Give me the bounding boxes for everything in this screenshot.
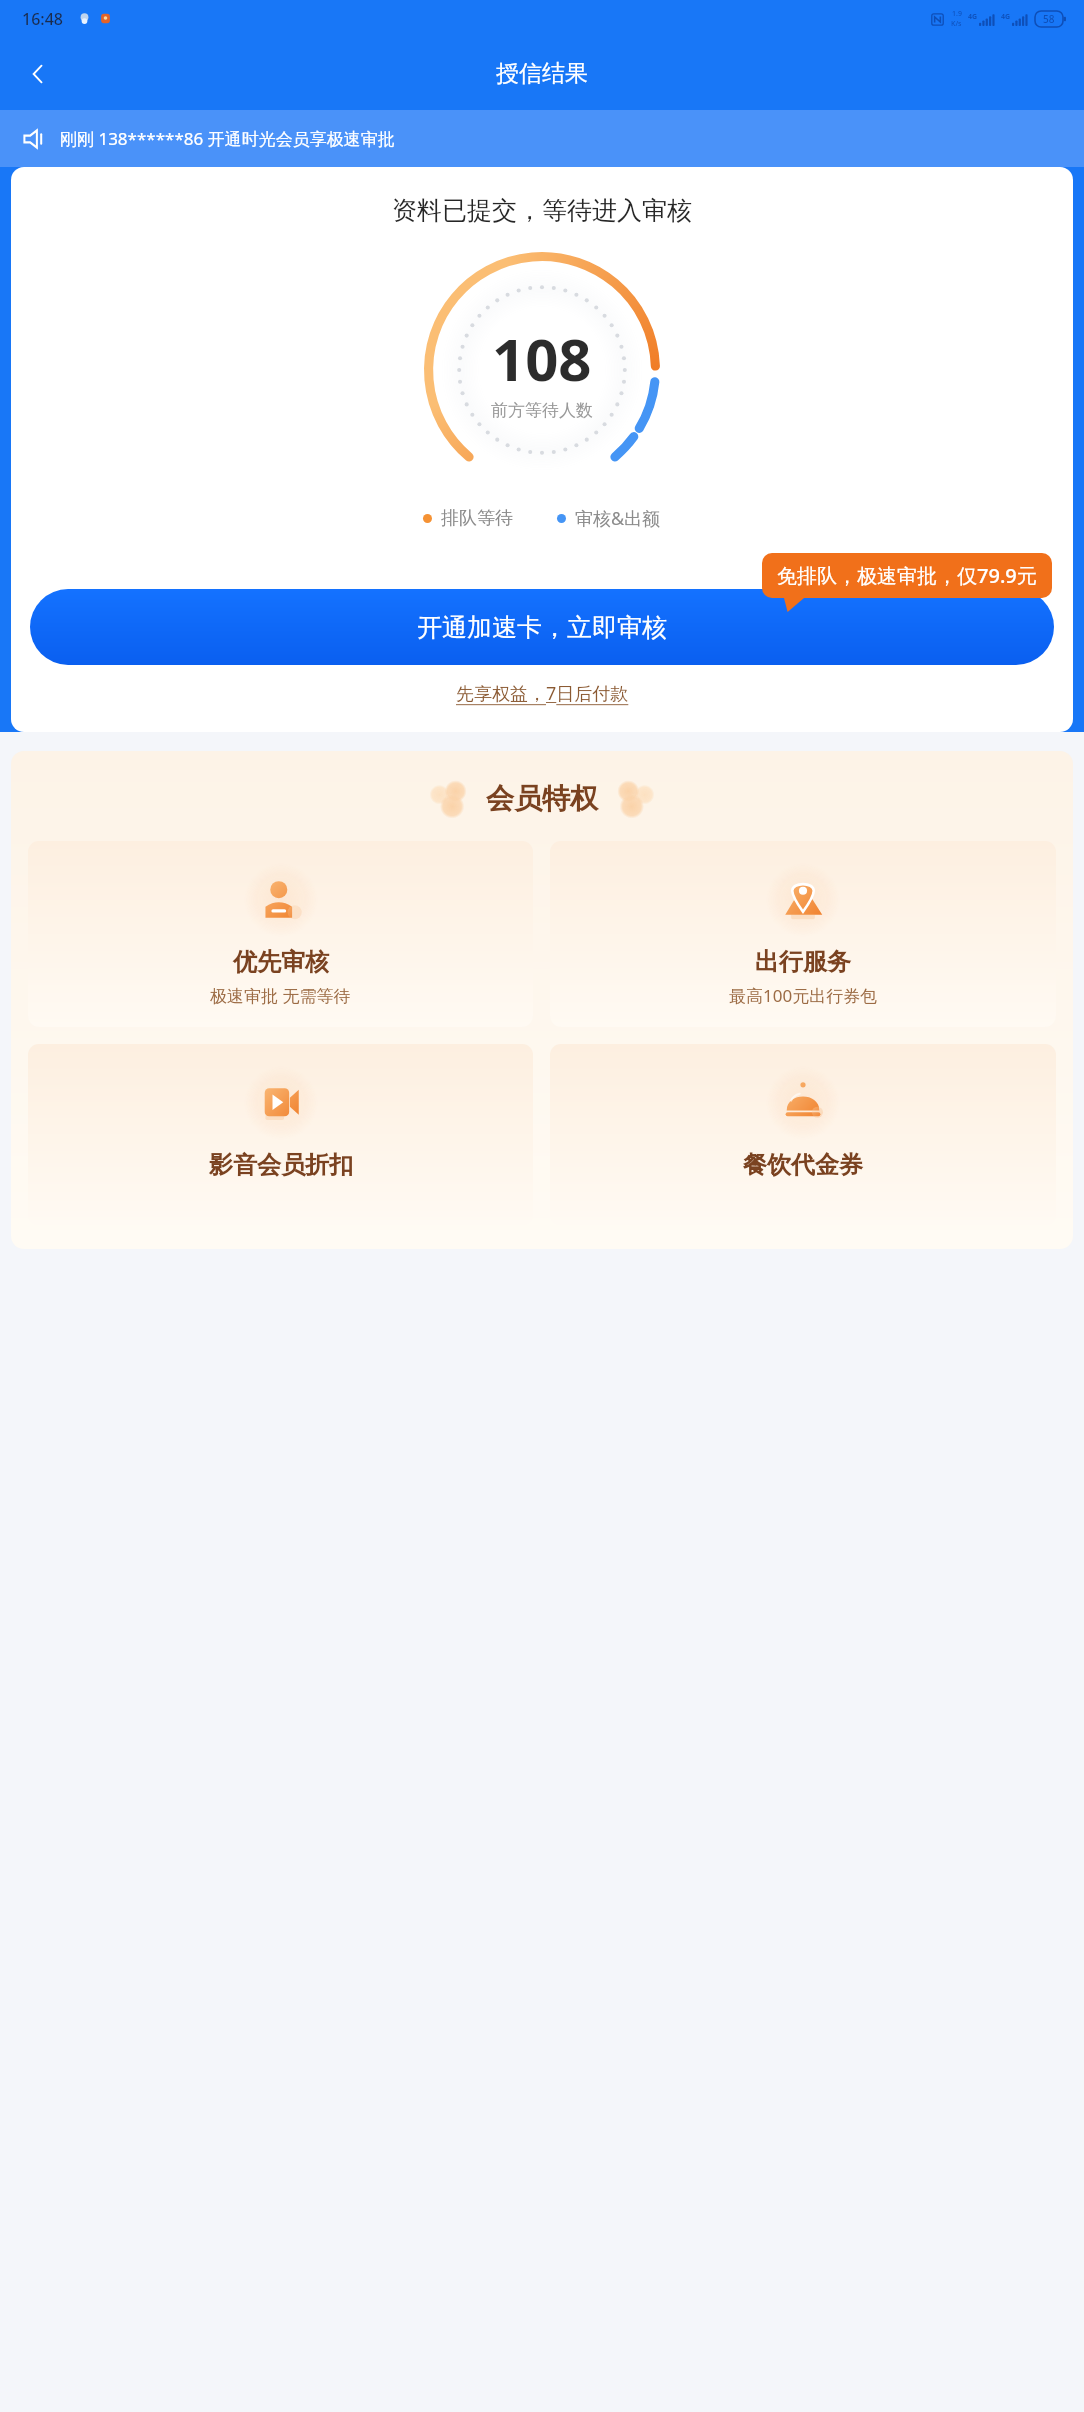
staticText: 免排队，极速审批，仅79.9元 xyxy=(777,562,1037,589)
staticText: 出行服务 xyxy=(755,947,851,977)
staticText: 影音会员折扣 xyxy=(209,1150,353,1180)
staticText: 前方等待人数 xyxy=(491,400,593,421)
staticText: 优先审核 xyxy=(233,947,329,977)
staticText: 资料已提交，等待进入审核 xyxy=(392,195,692,226)
button[interactable]: Back xyxy=(14,50,62,98)
staticText: 4G xyxy=(968,12,978,22)
staticText: 刚刚 138******86 开通时光会员享极速审批 xyxy=(60,127,395,150)
staticText: K/s xyxy=(951,19,962,29)
button[interactable]: 刚刚 138******86 开通时光会员享极速审批 xyxy=(0,110,1084,167)
button[interactable]: 优先审核 xyxy=(28,841,533,1027)
button[interactable]: 开通加速卡，立即审核 xyxy=(30,589,1054,665)
staticText: 授信结果 xyxy=(496,59,588,88)
button[interactable]: 影音会员折扣 xyxy=(28,1044,533,1225)
staticText: 58 xyxy=(1043,12,1055,26)
staticText: 最高100元出行券包 xyxy=(729,984,878,1007)
staticText: 4G xyxy=(1001,12,1011,22)
staticText: 108 xyxy=(492,319,592,398)
button[interactable]: 出行服务 xyxy=(550,841,1056,1027)
staticText: 会员特权 xyxy=(486,781,598,816)
staticText: 1.9 xyxy=(952,9,962,19)
button[interactable]: 餐饮代金券 xyxy=(550,1044,1056,1225)
staticText: 极速审批 无需等待 xyxy=(210,984,351,1007)
staticText: 开通加速卡，立即审核 xyxy=(417,612,667,643)
staticText: 餐饮代金券 xyxy=(743,1150,863,1180)
staticText: 16:48 xyxy=(22,8,63,30)
staticText: 审核&出额 xyxy=(575,506,661,531)
button[interactable]: 先享权益，7日后付款 xyxy=(456,681,629,706)
staticText: 排队等待 xyxy=(441,507,513,530)
